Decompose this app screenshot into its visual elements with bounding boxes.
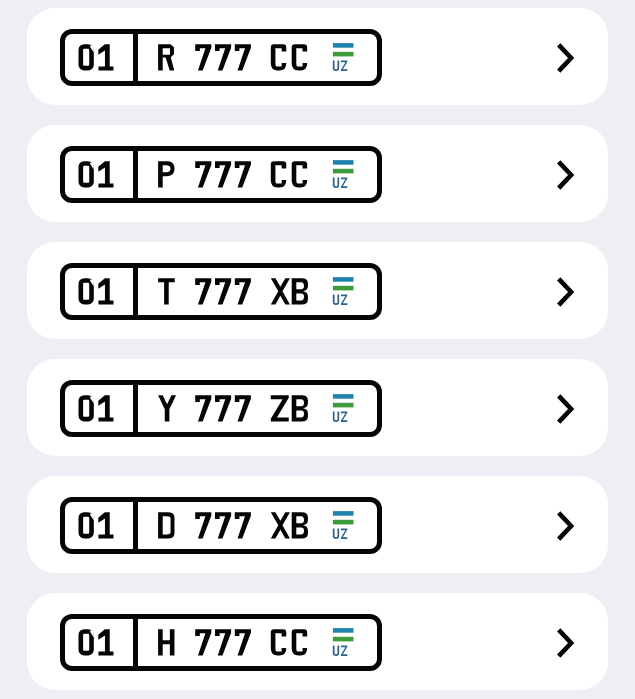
other: Open plate details (548, 40, 582, 74)
other: Open plate details (548, 157, 582, 191)
button[interactable]: Open plate details (27, 125, 608, 222)
other: Open plate details (548, 391, 582, 425)
button[interactable]: Open plate details (27, 359, 608, 456)
button[interactable]: Open plate details (27, 8, 608, 105)
button[interactable]: Open plate details (27, 593, 608, 690)
button[interactable]: Open plate details (27, 476, 608, 573)
other: Open plate details (548, 274, 582, 308)
other: Open plate details (548, 508, 582, 542)
button[interactable]: Open plate details (27, 242, 608, 339)
other: Open plate details (548, 625, 582, 659)
